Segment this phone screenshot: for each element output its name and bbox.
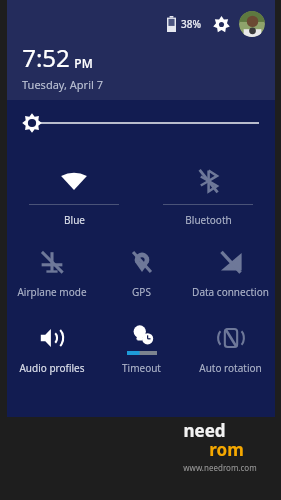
button[interactable]: Bluetooth xyxy=(141,152,275,234)
button[interactable]: Audio profiles xyxy=(7,320,97,388)
button[interactable]: Blue xyxy=(7,152,141,234)
staticText: Auto rotation xyxy=(199,361,262,375)
staticText: Timeout xyxy=(122,361,161,375)
button[interactable]: User profile xyxy=(239,11,265,37)
button[interactable]: Auto rotation xyxy=(186,320,275,388)
staticText: Audio profiles xyxy=(19,361,85,375)
staticText: Airplane mode xyxy=(17,285,87,299)
staticText: 38% xyxy=(181,17,201,31)
staticText: GPS xyxy=(132,285,151,299)
staticText: Blue xyxy=(64,213,85,227)
staticText: rom xyxy=(209,438,244,461)
button[interactable]: GPS xyxy=(97,244,186,306)
staticText: www.needrom.com xyxy=(183,462,257,473)
button[interactable]: Settings xyxy=(210,13,232,35)
staticText: Bluetooth xyxy=(185,213,232,227)
button[interactable]: Data connection xyxy=(186,244,275,306)
staticText: Data connection xyxy=(192,285,269,299)
button[interactable]: Timeout xyxy=(97,320,186,388)
staticText: need xyxy=(183,419,226,442)
button[interactable]: Airplane mode xyxy=(7,244,97,306)
staticText: PM xyxy=(74,55,93,71)
button[interactable]: Brightness xyxy=(7,100,275,146)
staticText: Tuesday, April 7 xyxy=(22,77,103,92)
staticText: 7:52 xyxy=(22,41,70,74)
